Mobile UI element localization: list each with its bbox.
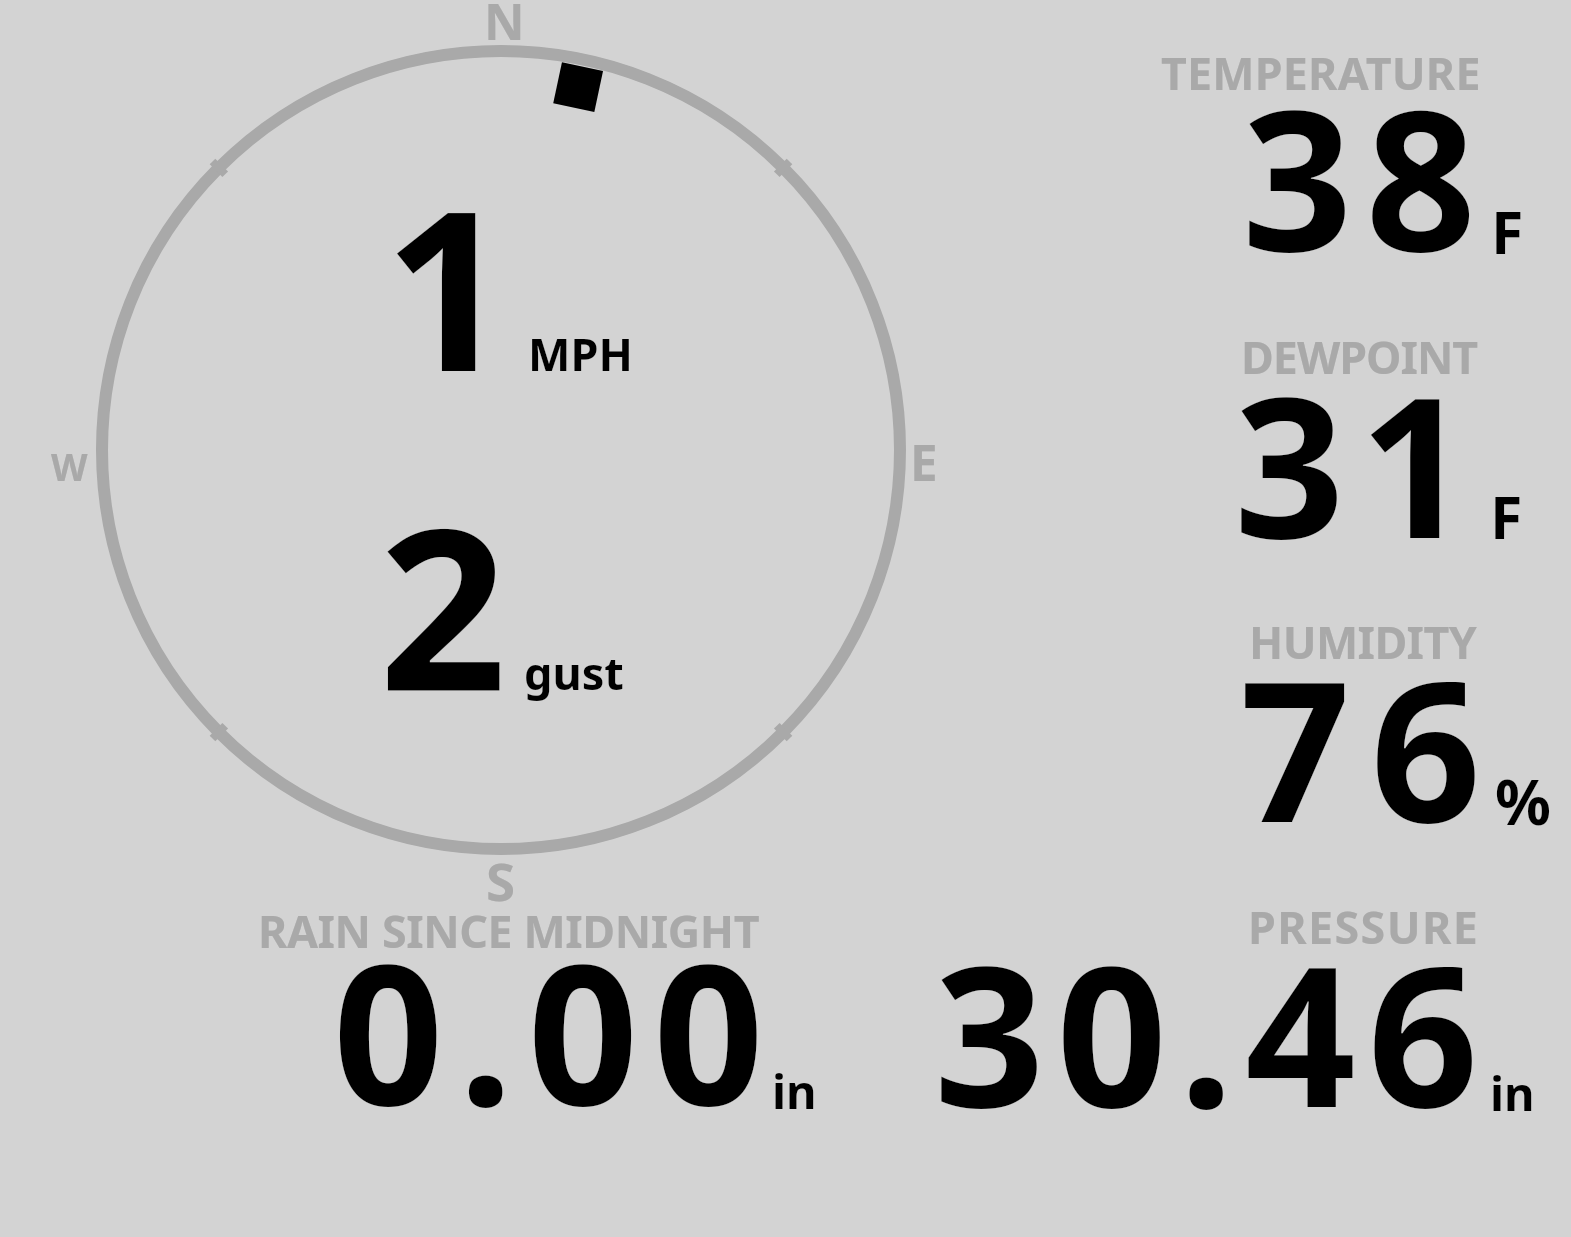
button[interactable]: TEMPERATURE	[1000, 0, 1571, 312]
staticText: TEMPERATURE	[1161, 42, 1481, 103]
staticText: N	[484, 0, 525, 55]
button[interactable]: PRESSURE	[880, 884, 1571, 1184]
staticText: in	[1490, 1061, 1535, 1125]
staticText: 1	[384, 135, 511, 436]
button[interactable]: DEWPOINT	[1000, 312, 1571, 598]
staticText: DEWPOINT	[1241, 326, 1478, 387]
staticText: E	[910, 428, 938, 495]
button[interactable]: Wind speed and direction compass	[96, 45, 906, 855]
staticText: F	[1490, 476, 1523, 556]
staticText: RAIN SINCE MIDNIGHT	[258, 900, 760, 961]
staticText: PRESSURE	[1248, 896, 1480, 957]
staticText: %	[1495, 759, 1551, 843]
button[interactable]: HUMIDITY	[1000, 598, 1571, 884]
staticText: HUMIDITY	[1249, 611, 1477, 672]
button[interactable]: RAIN SINCE MIDNIGHT	[200, 884, 860, 1184]
staticText: 76	[1240, 615, 1502, 878]
staticText: 0.00	[333, 898, 779, 1161]
staticText: gust	[524, 642, 624, 703]
staticText: 2	[379, 451, 507, 755]
staticText: 30.46	[934, 900, 1491, 1163]
staticText: S	[486, 845, 516, 917]
staticText: 31	[1234, 331, 1486, 594]
staticText: W	[51, 441, 88, 492]
staticText: in	[772, 1059, 817, 1123]
staticText: F	[1491, 191, 1524, 271]
staticText: MPH	[528, 323, 633, 384]
staticText: 38	[1242, 44, 1490, 307]
